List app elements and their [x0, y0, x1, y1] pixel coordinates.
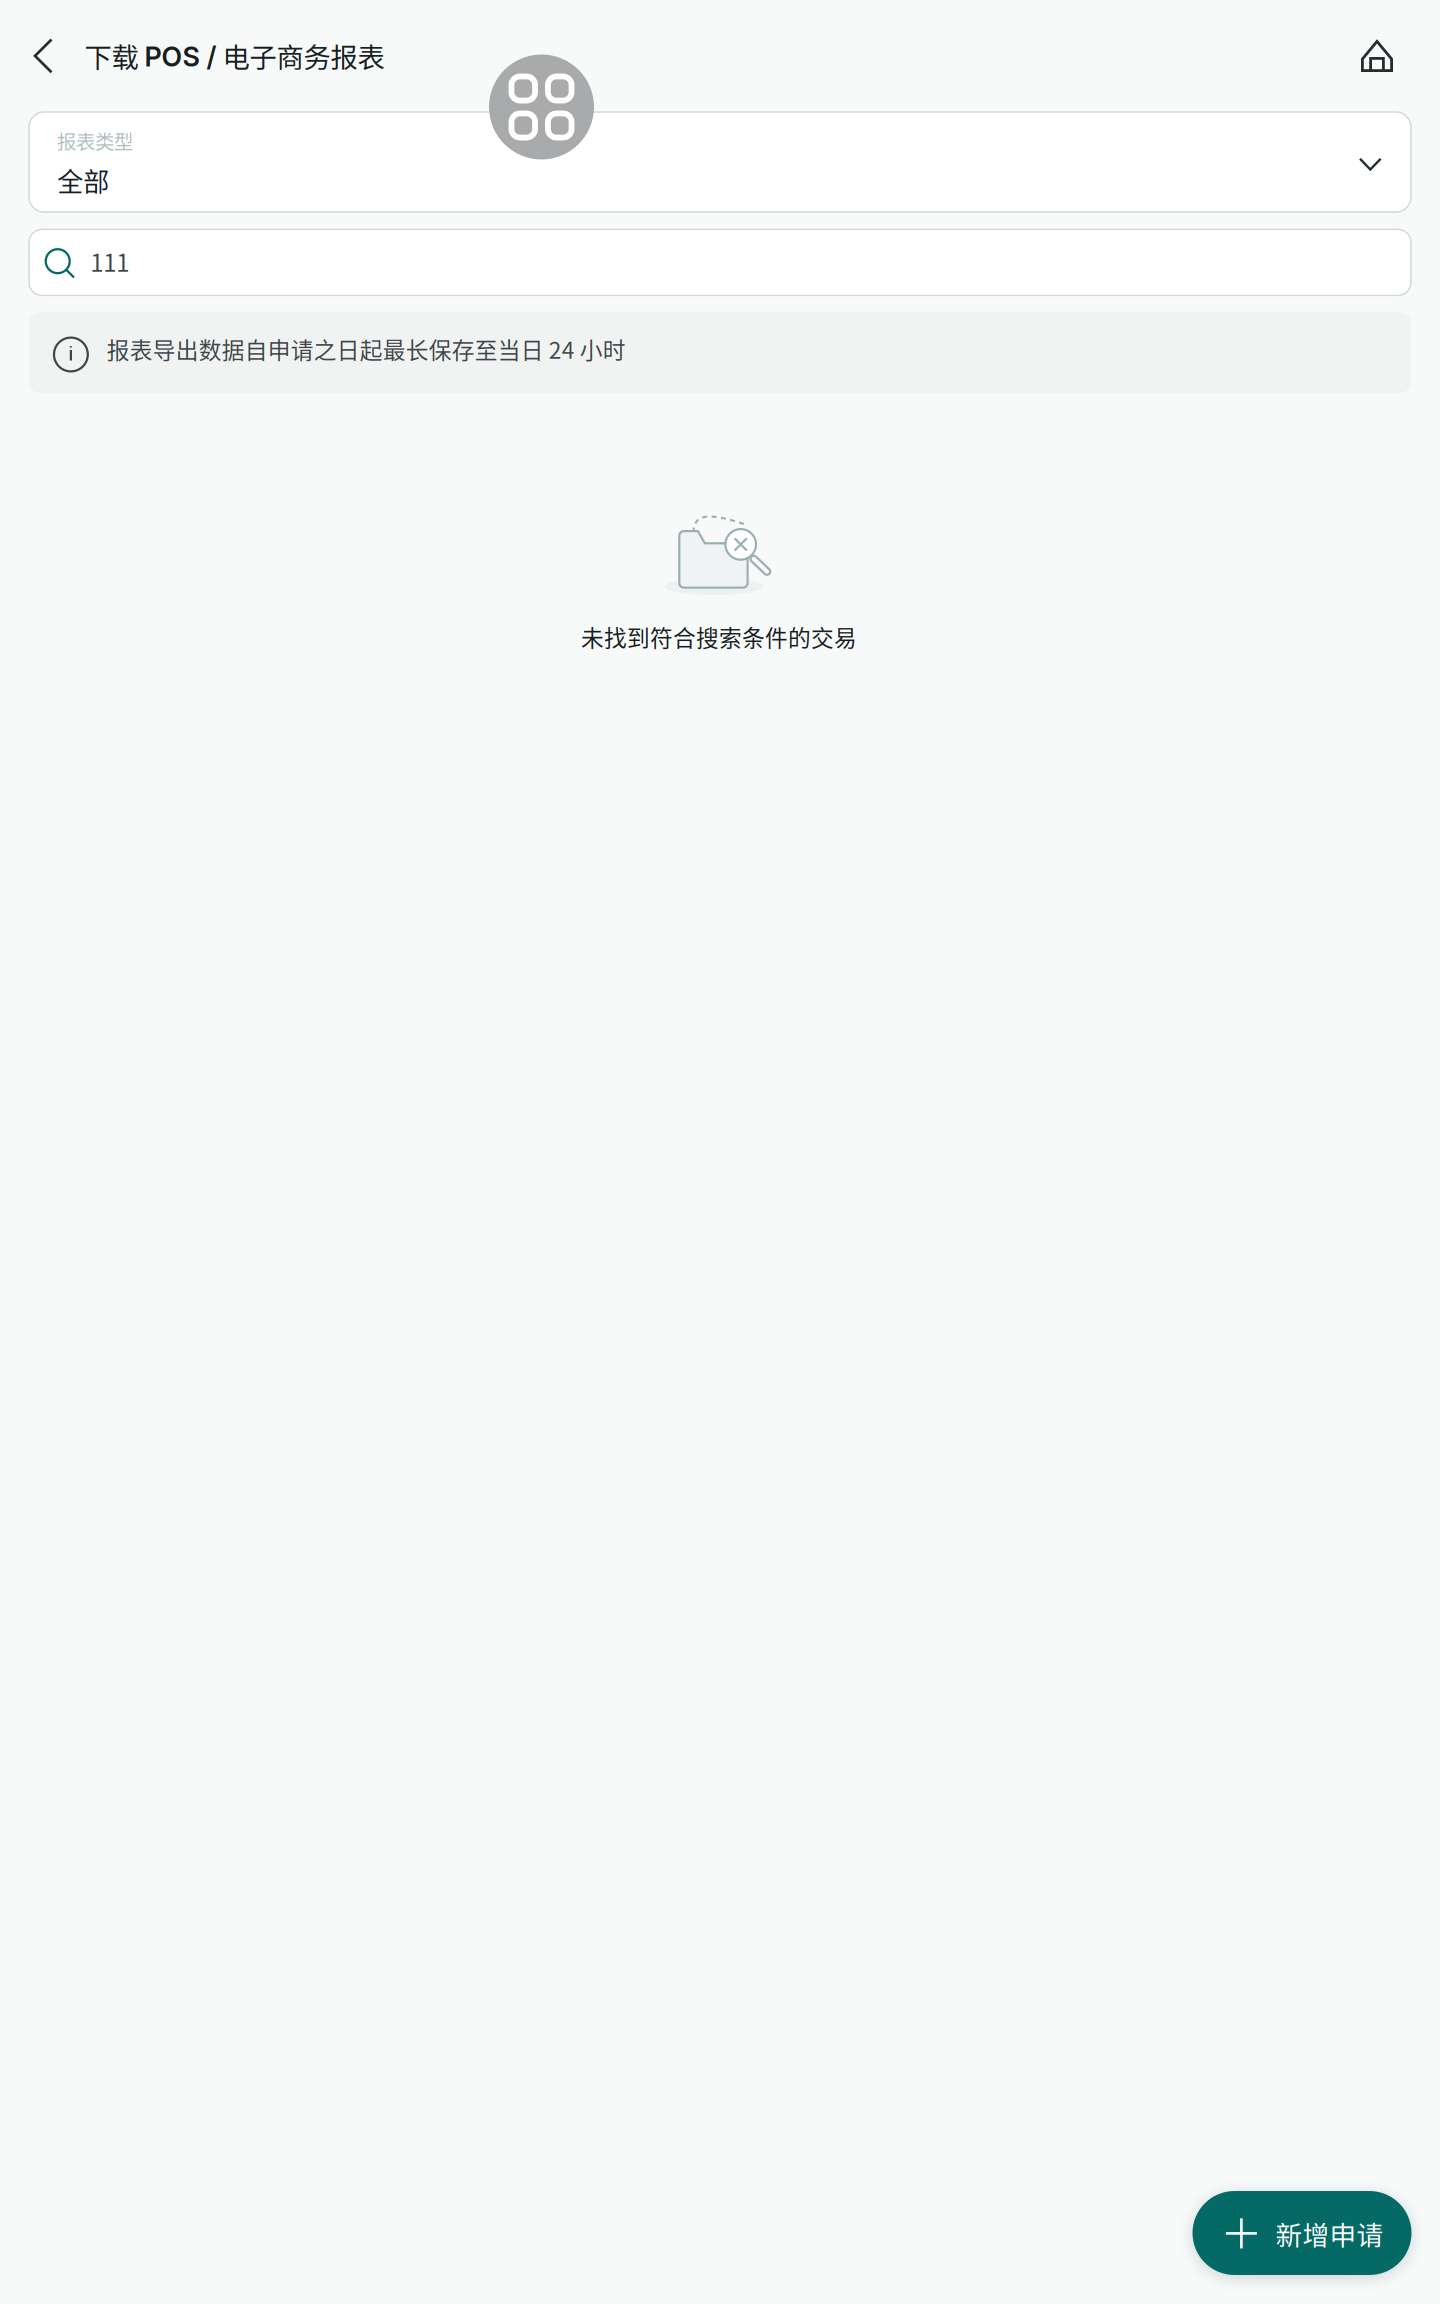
staticText: 报表类型: [57, 127, 133, 155]
staticText: 报表导出数据自申请之日起最长保存至当日 24 小时: [107, 332, 626, 365]
staticText: 未找到符合搜索条件的交易: [581, 620, 857, 653]
button[interactable]: Back: [14, 27, 72, 85]
staticText: 全部: [57, 161, 109, 199]
staticText: 下载 POS / 电子商务报表: [84, 37, 384, 75]
button[interactable]: Assistive menu: [489, 54, 594, 159]
staticText: 111: [90, 244, 129, 279]
staticText: 新增申请: [1276, 2214, 1384, 2253]
button[interactable]: Home: [1348, 27, 1406, 85]
button[interactable]: 新增申请: [1192, 2191, 1411, 2275]
button[interactable]: 报表类型: [29, 112, 1411, 212]
